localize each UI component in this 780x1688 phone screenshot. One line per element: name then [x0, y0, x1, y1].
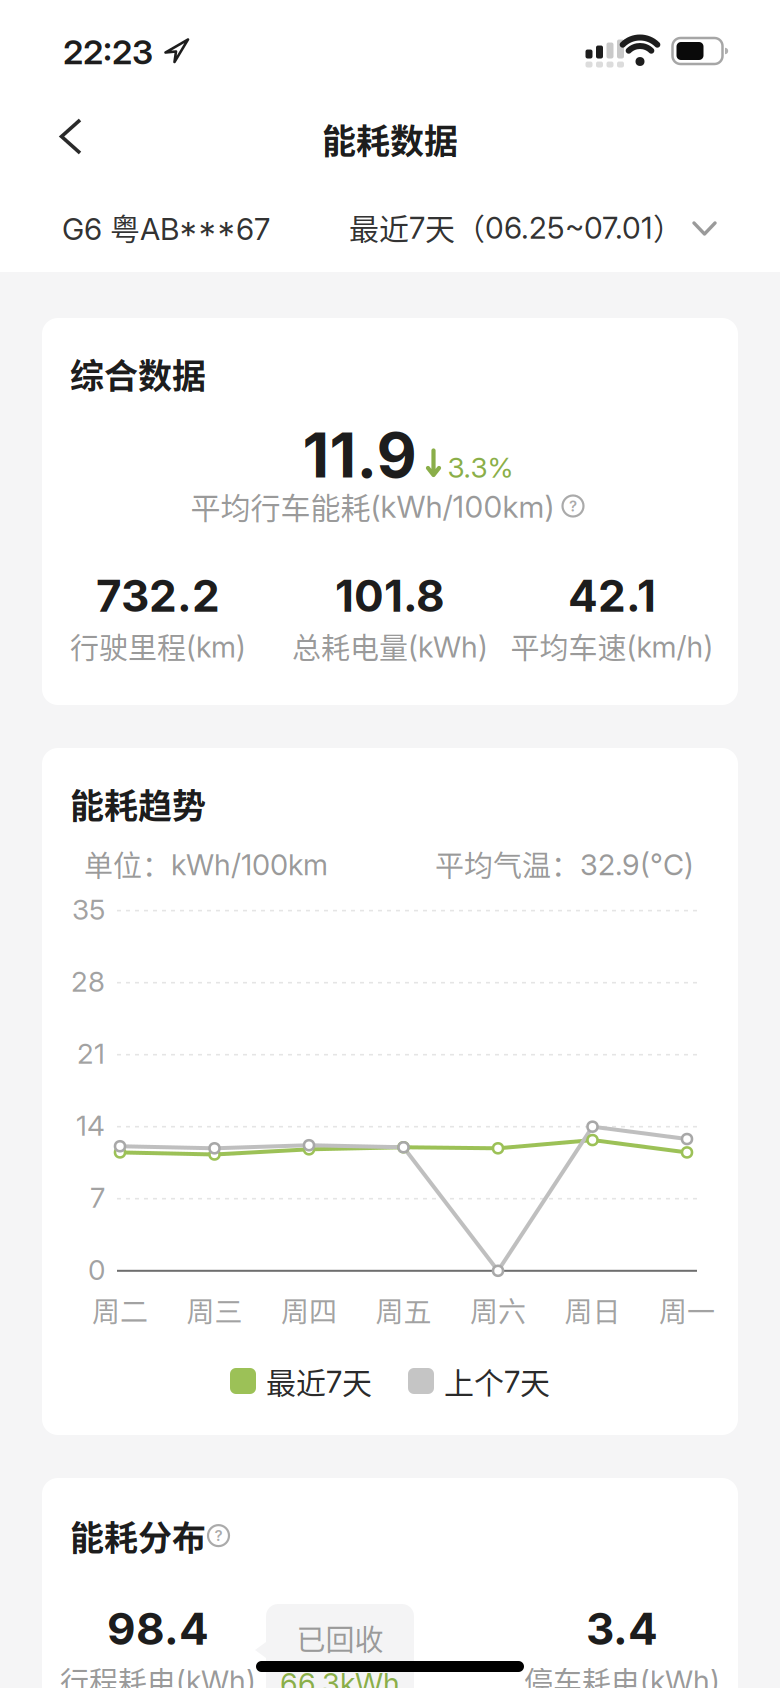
staticText: 28 — [71, 965, 105, 999]
staticText: 21 — [77, 1037, 105, 1071]
staticText: 最近7天 — [266, 1359, 372, 1403]
staticText: 平均车速(km/h) — [510, 625, 713, 667]
staticText: G6 粤AB***67 — [62, 205, 270, 249]
button[interactable]: 最近7天（06.25~07.01） — [349, 183, 780, 271]
staticText: 能耗数据 — [322, 114, 458, 164]
staticText: 101.8 — [335, 569, 445, 622]
staticText: 周一 — [659, 1290, 715, 1330]
button[interactable]: 能耗分布说明 — [208, 1525, 229, 1546]
staticText: 周三 — [186, 1290, 242, 1330]
staticText: 总耗电量(kWh) — [292, 625, 488, 667]
staticText: 0 — [88, 1253, 105, 1287]
staticText: 周六 — [470, 1290, 526, 1330]
staticText: 已回收 — [296, 1617, 383, 1659]
staticText: 66.3kWh — [280, 1666, 400, 1688]
staticText: 35 — [72, 893, 105, 926]
staticText: 98.4 — [107, 1602, 209, 1655]
staticText: 停车耗电(kWh) — [524, 1659, 720, 1688]
staticText: 行程耗电(kWh) — [60, 1659, 256, 1688]
staticText: 42.1 — [568, 569, 656, 622]
button[interactable]: Back — [0, 94, 111, 179]
staticText: 14 — [76, 1109, 105, 1143]
staticText: 平均气温：32.9(°C) — [435, 843, 694, 885]
staticText: 周四 — [281, 1290, 337, 1330]
staticText: ? — [569, 497, 577, 515]
staticText: 732.2 — [96, 569, 220, 622]
staticText: 上个7天 — [444, 1359, 550, 1403]
staticText: 单位：kWh/100km — [84, 843, 328, 885]
staticText: 22:23 — [63, 31, 153, 72]
staticText: 周五 — [375, 1290, 431, 1330]
staticText: 综合数据 — [70, 349, 206, 398]
staticText: 周日 — [564, 1290, 620, 1330]
staticText: ? — [214, 1526, 222, 1545]
staticText: 11.9 — [302, 417, 416, 492]
staticText: 7 — [90, 1181, 105, 1215]
staticText: 3.4 — [586, 1602, 658, 1655]
staticText: 平均行车能耗(kWh/100km) — [190, 484, 554, 528]
staticText: 3.3% — [447, 451, 513, 484]
staticText: 能耗分布 — [70, 1511, 206, 1560]
staticText: 能耗趋势 — [70, 779, 206, 828]
button[interactable]: 平均行车能耗说明 — [562, 495, 583, 516]
staticText: 最近7天（06.25~07.01） — [349, 205, 683, 249]
staticText: 周二 — [92, 1290, 148, 1330]
staticText: 行驶里程(km) — [70, 625, 246, 667]
button[interactable]: G6 粤AB***67 — [0, 183, 270, 271]
